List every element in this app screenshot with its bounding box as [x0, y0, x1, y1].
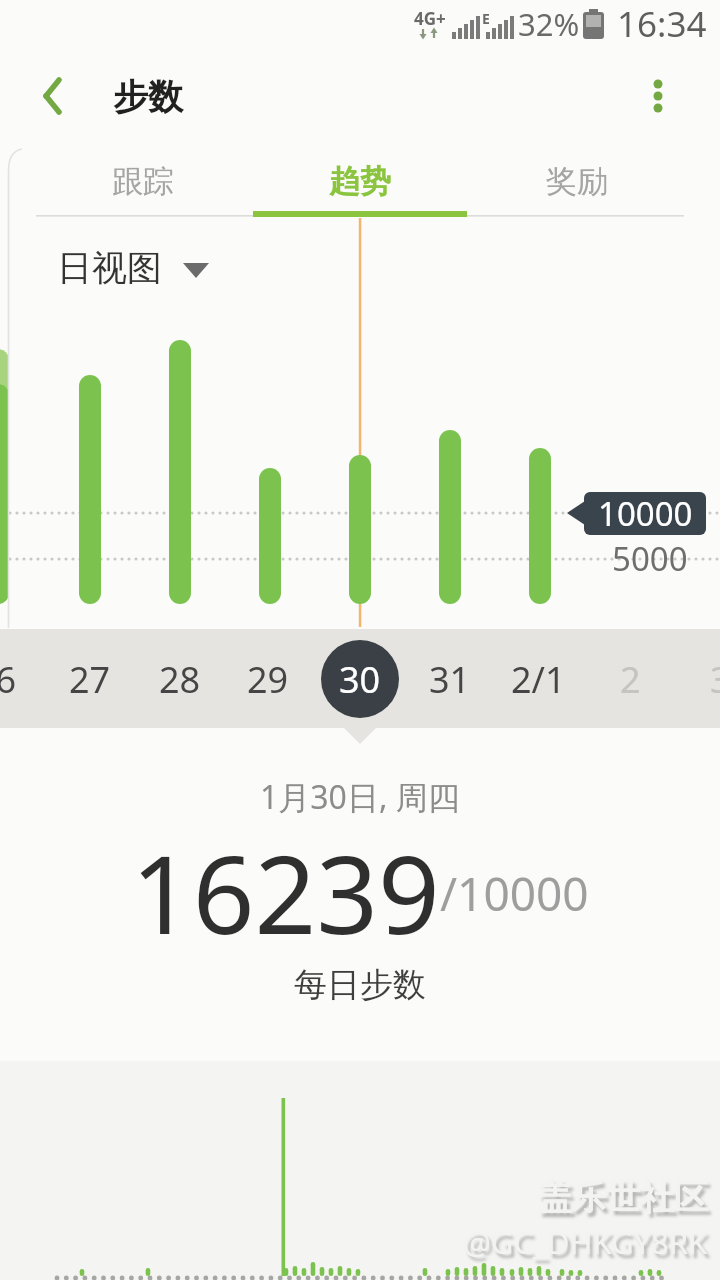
staticText: 3 [710, 655, 720, 704]
button[interactable]: 31 [330, 644, 570, 714]
staticText: 每日步数 [294, 964, 426, 1006]
staticText: 10000 [598, 491, 693, 536]
button[interactable]: 27 [0, 644, 210, 714]
button[interactable]: 跟踪 [23, 146, 263, 216]
button[interactable]: 30 [240, 644, 480, 714]
button[interactable]: 28 [60, 644, 300, 714]
staticText: 27 [69, 655, 111, 704]
staticText: 2 [620, 655, 641, 704]
staticText: 31 [429, 655, 471, 704]
staticText: 步数 [113, 75, 183, 119]
staticText: @GC_DHKGY8RK [463, 1221, 708, 1263]
button[interactable]: 2 [510, 644, 720, 714]
button[interactable]: 日视图 [40, 240, 220, 296]
staticText: 1月30日, 周四 [260, 775, 460, 819]
staticText: 盖乐世社区 [538, 1176, 708, 1219]
staticText: 奖励 [546, 162, 608, 201]
staticText: /10000 [440, 862, 589, 925]
staticText: 5000 [612, 536, 688, 581]
button[interactable]: 26 [0, 644, 116, 714]
staticText: 16239 [131, 819, 440, 939]
staticText: 26 [0, 655, 17, 704]
staticText: 4G+ [414, 7, 446, 30]
staticText: 日视图 [57, 246, 162, 290]
button[interactable]: 奖励 [457, 146, 697, 216]
staticText: 29 [247, 655, 289, 704]
button[interactable] [20, 66, 80, 126]
button[interactable] [628, 66, 688, 126]
staticText: 跟踪 [112, 162, 174, 201]
staticText: 16:34 [617, 0, 707, 48]
staticText: E [482, 9, 490, 28]
staticText: 2/1 [511, 655, 566, 704]
staticText: 32% [518, 3, 580, 45]
button[interactable]: 2/1 [418, 644, 658, 714]
button[interactable]: 趋势 [240, 146, 480, 216]
staticText: 趋势 [329, 162, 391, 201]
staticText: 28 [159, 655, 201, 704]
button[interactable]: 29 [148, 644, 388, 714]
staticText: 30 [339, 655, 381, 704]
